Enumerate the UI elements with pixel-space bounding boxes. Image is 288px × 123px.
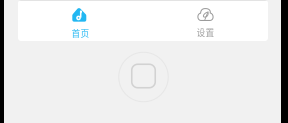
button[interactable]: 设置 <box>143 1 268 41</box>
button[interactable]: 首页 <box>18 1 143 41</box>
staticText: 首页 <box>71 27 89 39</box>
staticText: 设置 <box>196 26 214 38</box>
